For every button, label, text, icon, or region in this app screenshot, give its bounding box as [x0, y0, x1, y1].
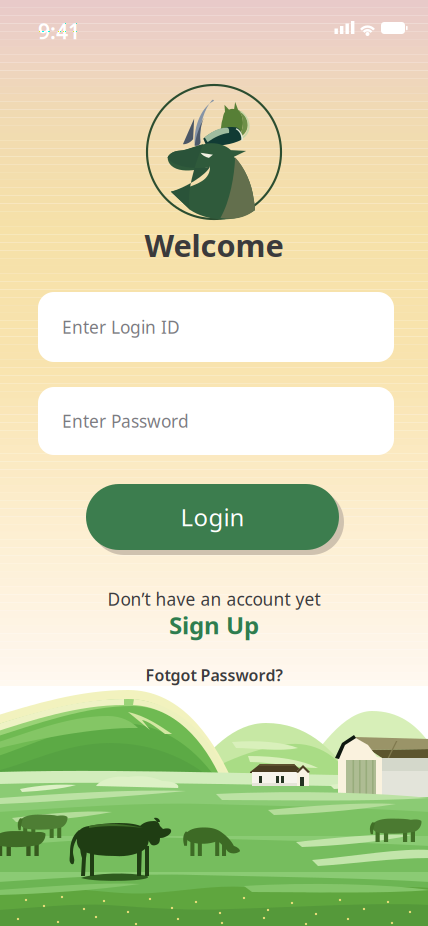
staticText: Fotgot Password? [145, 664, 282, 686]
staticText: Welcome [144, 225, 283, 265]
staticText: Enter Password [62, 409, 189, 432]
staticText: Sign Up [169, 609, 259, 641]
button[interactable]: Enter Password [38, 387, 394, 455]
button[interactable]: Enter Login ID [38, 292, 394, 362]
button[interactable]: Fotgot Password? [0, 665, 428, 685]
staticText: Don’t have an account yet [107, 587, 320, 610]
button[interactable]: Sign Up [0, 611, 428, 639]
button[interactable]: Login [86, 484, 344, 555]
staticText: Enter Login ID [62, 315, 180, 338]
staticText: Login [180, 501, 244, 533]
staticText: 9:41 [38, 17, 80, 45]
